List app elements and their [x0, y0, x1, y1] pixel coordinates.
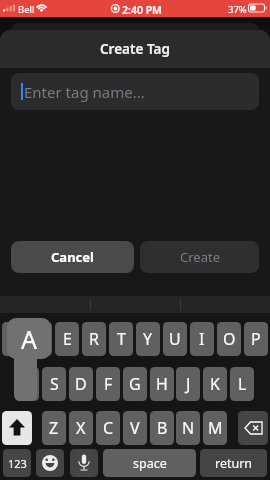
- button[interactable]: return: [200, 449, 267, 477]
- staticText: Cancel: [51, 248, 94, 266]
- button[interactable]: F: [96, 367, 120, 401]
- button[interactable]: V: [123, 411, 147, 445]
- staticText: P: [251, 328, 261, 350]
- button[interactable]: P: [244, 322, 268, 356]
- staticText: 2:40 PM: [122, 3, 162, 17]
- button[interactable]: [36, 449, 64, 477]
- button[interactable]: D: [69, 367, 93, 401]
- staticText: F: [104, 373, 113, 395]
- button[interactable]: Y: [136, 322, 160, 356]
- button[interactable]: K: [203, 367, 227, 401]
- button[interactable]: A: [15, 367, 39, 401]
- button[interactable]: U: [163, 322, 187, 356]
- staticText: T: [117, 328, 126, 350]
- button[interactable]: S: [42, 367, 66, 401]
- staticText: D: [75, 373, 87, 395]
- button[interactable]: B: [150, 411, 174, 445]
- button[interactable]: R: [82, 322, 106, 356]
- staticText: W: [33, 328, 48, 350]
- staticText: A: [21, 322, 37, 356]
- button[interactable]: J: [176, 367, 200, 401]
- button[interactable]: Enter tag name...: [11, 73, 259, 110]
- staticText: Z: [49, 417, 59, 439]
- button[interactable]: M: [203, 411, 227, 445]
- staticText: H: [156, 373, 168, 395]
- staticText: G: [129, 373, 141, 395]
- button[interactable]: [238, 411, 268, 445]
- button[interactable]: space: [103, 449, 196, 477]
- button[interactable]: E: [55, 322, 79, 356]
- button[interactable]: I: [190, 322, 214, 356]
- staticText: M: [208, 417, 223, 439]
- button[interactable]: X: [69, 411, 93, 445]
- staticText: 37%: [228, 3, 247, 16]
- button[interactable]: L: [230, 367, 254, 401]
- button[interactable]: G: [123, 367, 147, 401]
- button[interactable]: Create: [140, 241, 259, 273]
- button[interactable]: [2, 411, 32, 445]
- staticText: Enter tag name...: [24, 82, 145, 102]
- staticText: B: [157, 417, 168, 439]
- staticText: Bell: [18, 3, 35, 16]
- staticText: N: [182, 417, 195, 439]
- button[interactable]: O: [217, 322, 241, 356]
- staticText: J: [186, 373, 191, 395]
- button[interactable]: Z: [42, 411, 66, 445]
- staticText: U: [169, 328, 181, 350]
- staticText: space: [133, 455, 167, 472]
- staticText: E: [63, 328, 72, 350]
- staticText: K: [210, 373, 220, 395]
- button[interactable]: N: [176, 411, 200, 445]
- staticText: return: [215, 455, 253, 472]
- button[interactable]: [70, 449, 98, 477]
- staticText: Y: [143, 328, 153, 350]
- staticText: Create Tag: [100, 40, 170, 58]
- button[interactable]: T: [109, 322, 133, 356]
- staticText: L: [238, 373, 247, 395]
- staticText: 123: [8, 456, 27, 471]
- staticText: S: [50, 373, 59, 395]
- button[interactable]: 123: [3, 449, 31, 477]
- staticText: O: [223, 328, 236, 350]
- button[interactable]: Q: [2, 322, 26, 356]
- staticText: Create: [180, 248, 220, 266]
- button[interactable]: H: [150, 367, 174, 401]
- staticText: R: [89, 328, 99, 350]
- button[interactable]: Cancel: [11, 241, 134, 273]
- button[interactable]: W: [28, 322, 52, 356]
- staticText: V: [130, 417, 140, 439]
- button[interactable]: C: [96, 411, 120, 445]
- staticText: X: [76, 417, 86, 439]
- staticText: I: [199, 328, 205, 350]
- staticText: C: [103, 417, 114, 439]
